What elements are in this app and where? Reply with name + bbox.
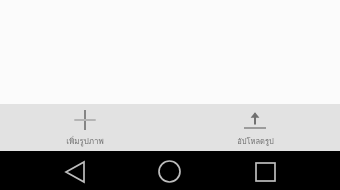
button[interactable]: Upload photo [170,104,340,151]
staticText: เพิ่มรูปภาพ [66,135,104,148]
button[interactable]: Add photo [0,104,170,151]
button[interactable]: Home [149,152,190,190]
button[interactable]: Back [54,152,95,190]
button[interactable]: Recent apps [245,152,286,190]
staticText: อัปโหลดรูป [237,135,274,147]
